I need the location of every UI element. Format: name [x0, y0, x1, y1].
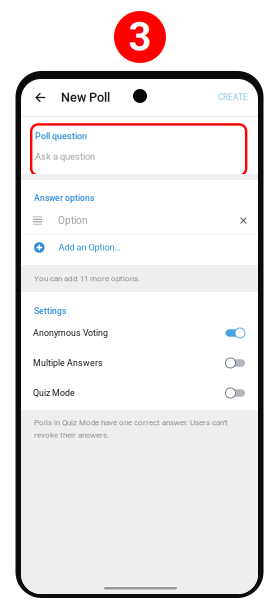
staticText: Add an Option... — [58, 242, 120, 253]
button[interactable]: Option — [21, 207, 258, 233]
staticText: CREATE — [218, 93, 248, 102]
staticText: Settings — [34, 306, 66, 316]
staticText: Answer options — [34, 193, 94, 203]
button[interactable]: Quiz Mode — [21, 378, 258, 408]
staticText: revoke their answers. — [34, 430, 109, 440]
staticText: Option — [58, 215, 88, 226]
staticText: Multiple Answers — [33, 358, 103, 368]
button[interactable]: Multiple Answers — [21, 348, 258, 378]
button[interactable]: CREATE — [210, 79, 256, 116]
staticText: Ask a question — [35, 151, 95, 162]
staticText: Polls in Quiz Mode have one correct answ… — [34, 418, 228, 427]
staticText: You can add 11 more options. — [34, 274, 140, 283]
button[interactable]: Back — [28, 79, 53, 116]
staticText: Anonymous Voting — [33, 328, 108, 338]
staticText: 3 — [128, 14, 151, 60]
staticText: Quiz Mode — [33, 388, 75, 398]
button[interactable]: Anonymous Voting — [21, 318, 258, 348]
button[interactable]: Add an Option... — [21, 234, 258, 260]
staticText: Poll question — [35, 131, 87, 141]
staticText: New Poll — [61, 90, 110, 105]
